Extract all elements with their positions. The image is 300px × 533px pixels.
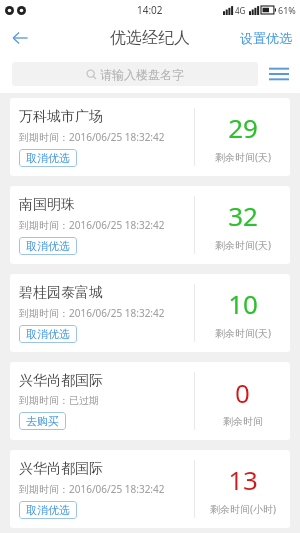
staticText: 优选经纪人 [110, 28, 190, 48]
button[interactable]: 取消优选 [19, 149, 77, 167]
staticText: 设置优选 [240, 30, 292, 46]
staticText: 剩余时间(小时) [210, 502, 276, 516]
staticText: 取消优选 [26, 239, 70, 253]
staticText: 取消优选 [26, 503, 70, 517]
button[interactable]: 兴华尚都国际 [10, 450, 290, 528]
button[interactable]: 去购买 [19, 412, 66, 430]
button[interactable]: 碧桂园泰富城 [10, 274, 290, 352]
button[interactable]: 取消优选 [19, 325, 77, 343]
staticText: 32 [228, 198, 258, 233]
staticText: 剩余时间(天) [215, 150, 271, 164]
staticText: 剩余时间(天) [215, 326, 271, 340]
staticText: 碧桂园泰富城 [19, 284, 103, 302]
staticText: 29 [228, 110, 258, 145]
staticText: 南国明珠 [19, 196, 75, 214]
staticText: 到期时间：2016/06/25 18:32:42 [19, 482, 165, 496]
staticText: 到期时间：2016/06/25 18:32:42 [19, 218, 165, 232]
staticText: 取消优选 [26, 151, 70, 165]
button[interactable]: 南国明珠 [10, 186, 290, 264]
button[interactable]: 取消优选 [19, 237, 77, 255]
staticText: 万科城市广场 [19, 108, 103, 126]
button[interactable]: 兴华尚都国际 [10, 362, 290, 440]
staticText: 到期时间：2016/06/25 18:32:42 [19, 306, 165, 320]
button[interactable]: 设置优选 [232, 24, 300, 52]
button[interactable]: 取消优选 [19, 501, 77, 519]
staticText: 兴华尚都国际 [19, 460, 103, 478]
staticText: 取消优选 [26, 327, 70, 341]
button[interactable]: 请输入楼盘名字 [12, 62, 258, 86]
staticText: 61% [278, 4, 296, 16]
staticText: 14:02 [137, 3, 163, 17]
staticText: 兴华尚都国际 [19, 372, 103, 390]
button[interactable]: Menu [258, 55, 300, 93]
staticText: 剩余时间 [223, 415, 263, 428]
staticText: 10 [228, 286, 258, 321]
staticText: 13 [228, 462, 258, 497]
staticText: 去购买 [26, 414, 59, 428]
button[interactable]: 万科城市广场 [10, 98, 290, 176]
staticText: 请输入楼盘名字 [100, 67, 184, 82]
staticText: 剩余时间(天) [215, 238, 271, 252]
staticText: 0 [235, 375, 250, 410]
staticText: 到期时间：已过期 [19, 394, 99, 407]
staticText: 4G [235, 5, 246, 16]
staticText: 到期时间：2016/06/25 18:32:42 [19, 130, 165, 144]
button[interactable]: Back [0, 20, 40, 55]
